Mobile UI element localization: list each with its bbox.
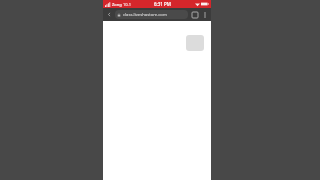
- button[interactable]: Image placeholder: [186, 35, 204, 51]
- button[interactable]: Tabs: [190, 10, 199, 19]
- button[interactable]: class.liveshastore.com: [115, 10, 188, 19]
- staticText: 6:31 PM: [154, 1, 171, 7]
- button[interactable]: Back: [105, 10, 114, 19]
- staticText: 10.1: [123, 2, 131, 7]
- staticText: Zong: [112, 2, 122, 7]
- button[interactable]: More options: [200, 10, 209, 19]
- staticText: class.liveshastore.com: [123, 12, 167, 18]
